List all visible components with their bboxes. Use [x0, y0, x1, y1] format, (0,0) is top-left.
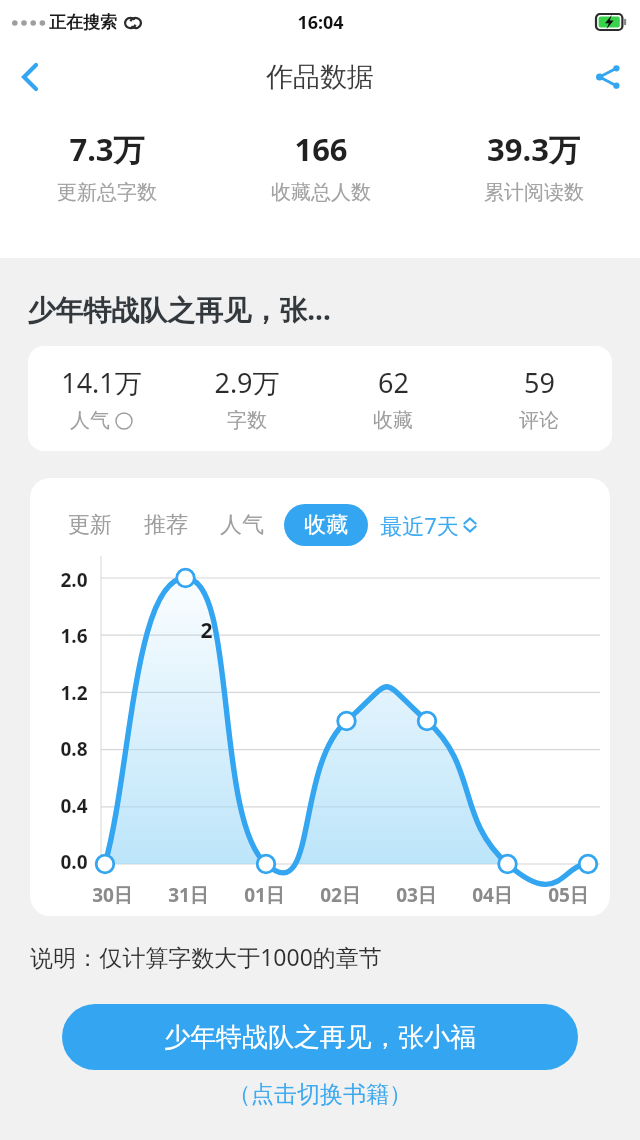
button[interactable]: Share: [576, 47, 640, 107]
staticText: 人气: [70, 408, 110, 433]
staticText: 收藏总人数: [271, 180, 371, 205]
staticText: 字数: [227, 408, 267, 433]
button[interactable]: 59: [466, 364, 612, 433]
staticText: 7.3万: [69, 128, 145, 170]
staticText: 39.3万: [487, 128, 580, 170]
staticText: 评论: [519, 408, 559, 433]
staticText: 166: [294, 128, 348, 170]
button[interactable]: 7.3万: [0, 110, 214, 258]
staticText: 30日: [92, 882, 133, 908]
staticText: 收藏: [304, 511, 348, 539]
staticText: 更新总字数: [57, 180, 157, 205]
staticText: 人气: [220, 511, 264, 539]
button[interactable]: 39.3万: [427, 110, 640, 258]
staticText: 2.9万: [214, 364, 280, 401]
button[interactable]: 2.9万: [174, 364, 320, 433]
staticText: 1.2: [60, 680, 88, 706]
staticText: 最近7天: [380, 510, 459, 540]
button[interactable]: 62: [320, 364, 466, 433]
staticText: 2.0: [60, 567, 88, 593]
staticText: 推荐: [144, 511, 188, 539]
button[interactable]: （点击切换书籍）: [228, 1080, 412, 1109]
staticText: 62: [378, 364, 409, 401]
staticText: 作品数据: [266, 60, 374, 94]
staticText: 0.0: [60, 849, 88, 875]
button[interactable]: 最近7天: [380, 510, 477, 540]
staticText: 少年特战队之再见，张...: [27, 290, 331, 328]
staticText: 0.8: [60, 736, 88, 762]
staticText: 正在搜索: [49, 12, 117, 33]
staticText: 更新: [68, 511, 112, 539]
button[interactable]: 少年特战队之再见，张小福: [62, 1004, 578, 1070]
staticText: 02日: [320, 882, 361, 908]
staticText: 2: [200, 616, 213, 645]
staticText: 16:04: [297, 10, 344, 35]
staticText: 05日: [548, 882, 589, 908]
staticText: 04日: [472, 882, 513, 908]
staticText: 1.6: [60, 623, 88, 649]
button[interactable]: 收藏: [284, 504, 368, 546]
button[interactable]: Back: [0, 47, 60, 107]
staticText: 收藏: [373, 408, 413, 433]
staticText: 31日: [168, 882, 209, 908]
button[interactable]: 14.1万: [28, 364, 174, 433]
button[interactable]: 人气: [220, 504, 264, 546]
staticText: 14.1万: [61, 364, 142, 401]
staticText: 少年特战队之再见，张小福: [164, 1021, 476, 1054]
staticText: 0.4: [60, 793, 88, 819]
staticText: 说明：仅计算字数大于1000的章节: [30, 941, 382, 972]
button[interactable]: 更新: [68, 504, 112, 546]
staticText: 03日: [396, 882, 437, 908]
button[interactable]: 166: [214, 110, 427, 258]
staticText: 累计阅读数: [484, 180, 584, 205]
staticText: （点击切换书籍）: [228, 1080, 412, 1109]
button[interactable]: 推荐: [144, 504, 188, 546]
staticText: 01日: [244, 882, 285, 908]
staticText: 59: [524, 364, 555, 401]
